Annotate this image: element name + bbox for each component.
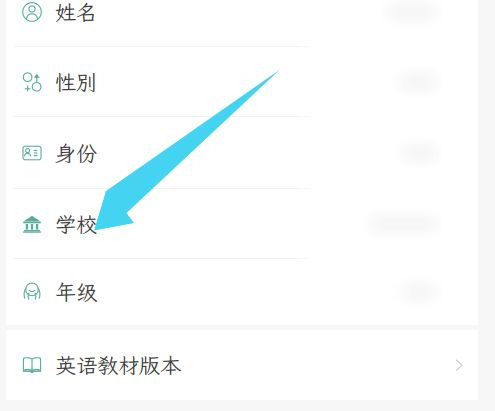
button[interactable]: 英语教材版本 (6, 330, 478, 400)
staticText: 年级 (55, 278, 97, 306)
staticText: 英语教材版本 (55, 351, 181, 379)
button[interactable]: 性别 (6, 47, 478, 117)
button[interactable]: 学校 (6, 189, 478, 259)
staticText: 姓名 (55, 0, 97, 26)
button[interactable]: 姓名 (6, 0, 478, 47)
button[interactable]: 年级 (6, 259, 478, 325)
staticText: 性别 (55, 68, 97, 96)
staticText: 身份 (55, 139, 97, 167)
button[interactable]: 身份 (6, 117, 478, 189)
staticText: 学校 (55, 210, 97, 238)
